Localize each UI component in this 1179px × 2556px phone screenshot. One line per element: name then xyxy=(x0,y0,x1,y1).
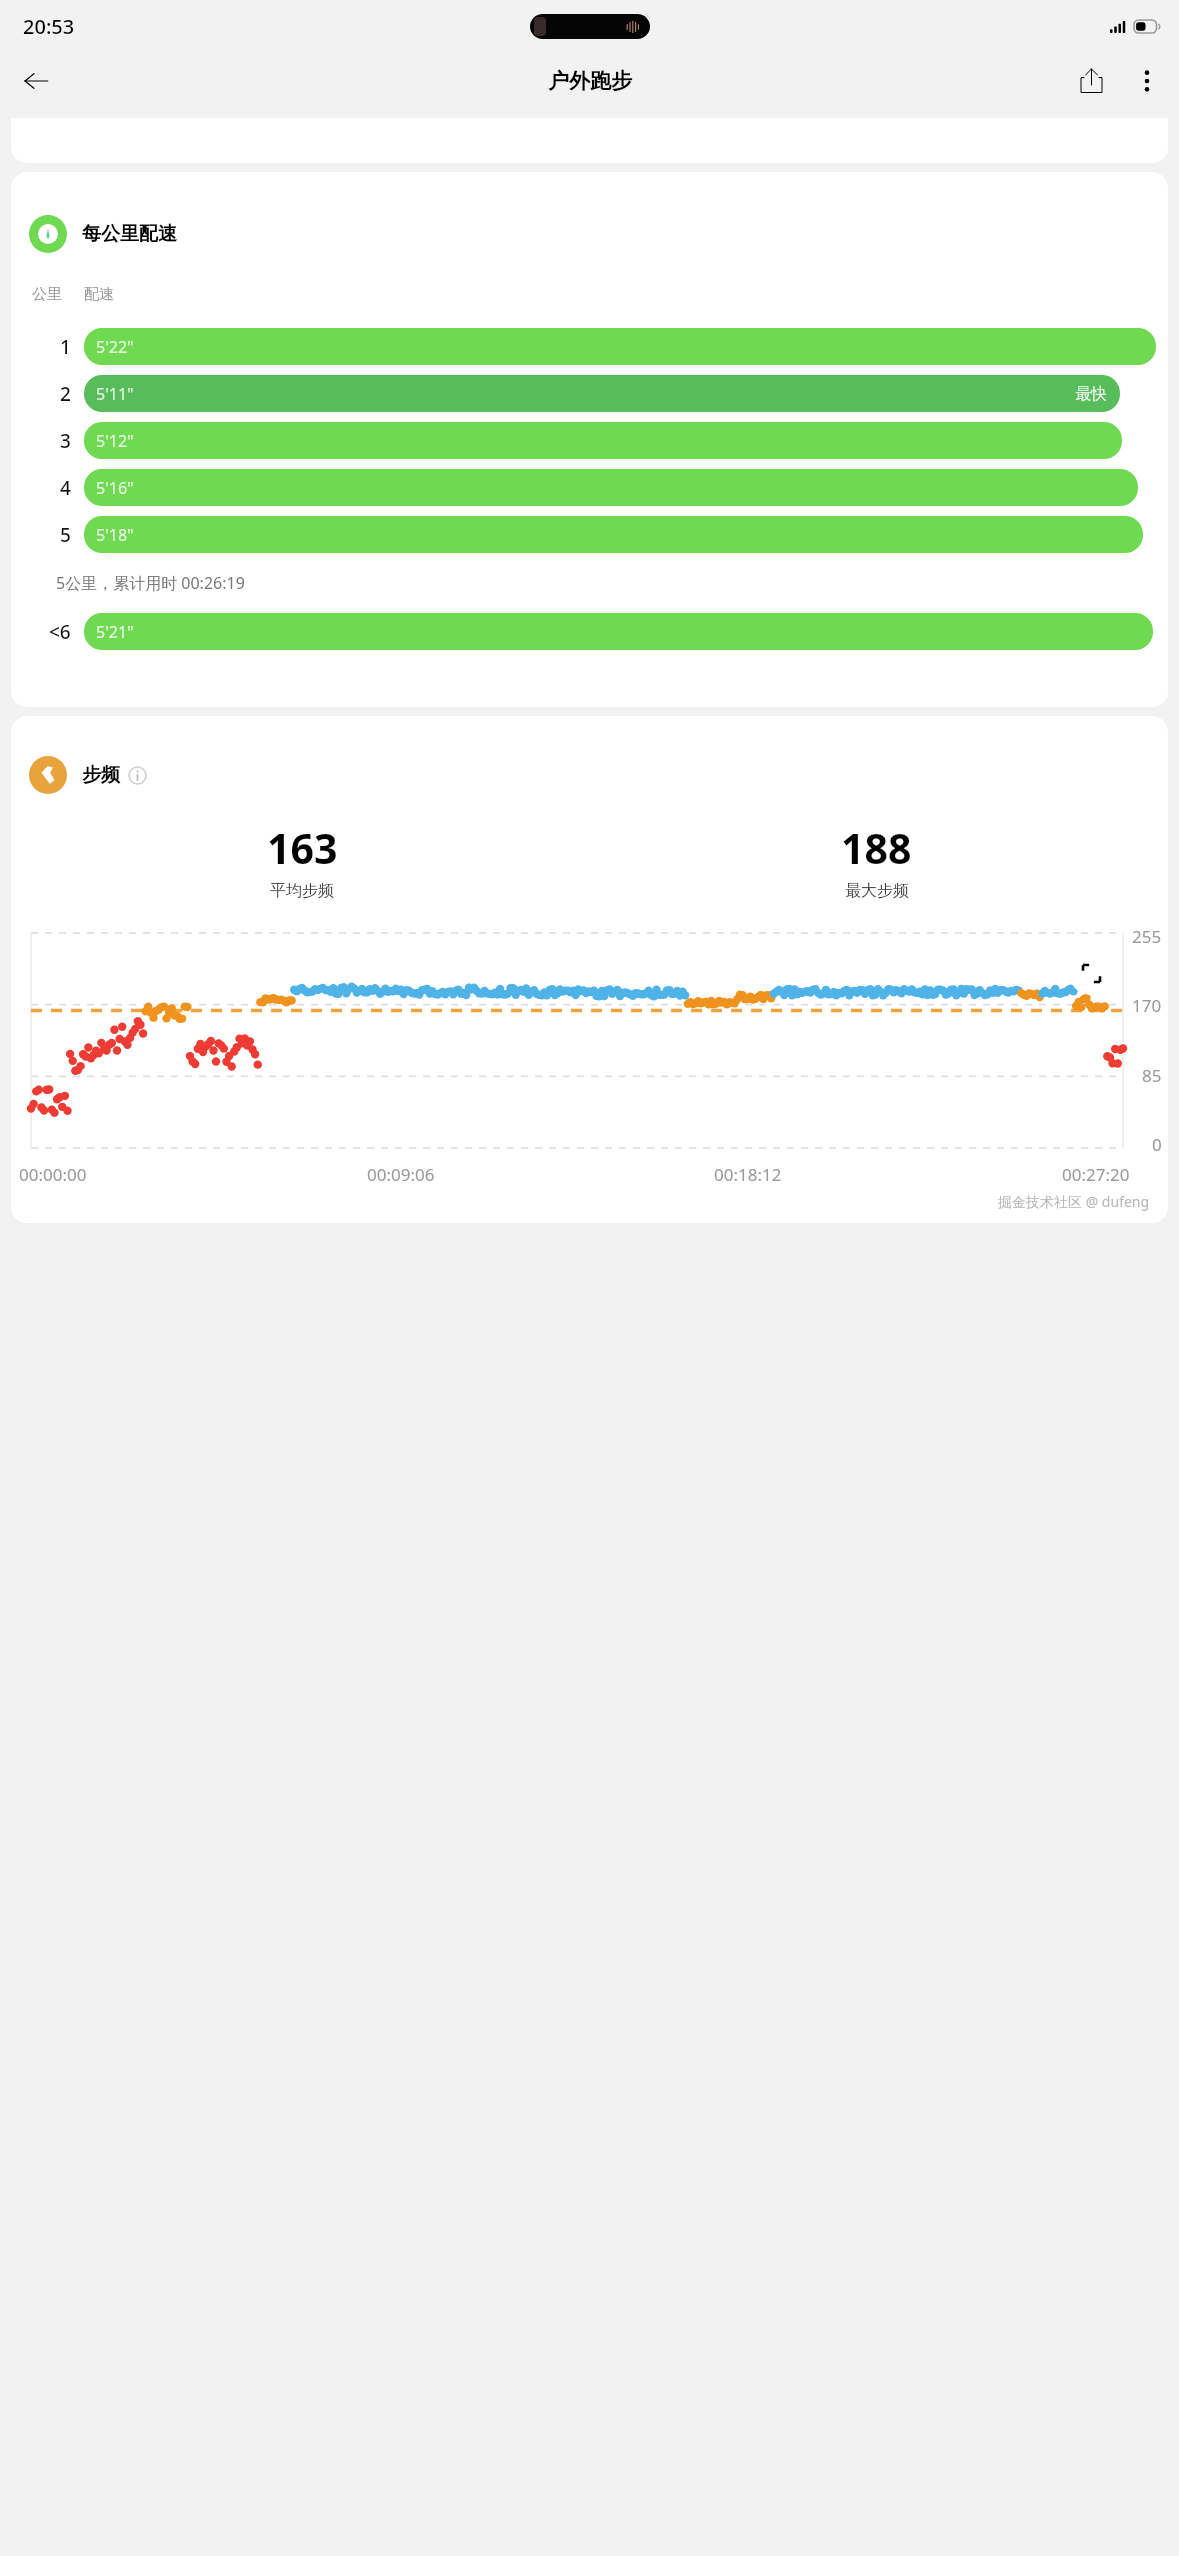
staticText: 5'18" xyxy=(96,524,134,546)
staticText: 1 xyxy=(60,334,71,360)
staticText: 5'21" xyxy=(96,621,134,643)
staticText: 5'12" xyxy=(96,430,134,452)
button[interactable]: Share xyxy=(1063,53,1119,108)
staticText: <6 xyxy=(49,619,71,645)
staticText: 5'16" xyxy=(96,477,134,499)
staticText: 00:27:20 xyxy=(1062,1163,1130,1186)
button[interactable]: Back xyxy=(8,53,64,108)
staticText: 5公里，累计用时 00:26:19 xyxy=(56,572,245,594)
button[interactable]: 步频 xyxy=(11,716,1168,1223)
staticText: 188 xyxy=(841,820,912,876)
staticText: 255 xyxy=(1132,925,1162,948)
staticText: 平均步频 xyxy=(270,881,334,901)
staticText: 2 xyxy=(60,381,71,407)
button[interactable]: 每公里配速 xyxy=(11,172,1168,707)
staticText: 0 xyxy=(1152,1133,1162,1156)
staticText: 配速 xyxy=(84,285,114,304)
staticText: 公里 xyxy=(32,285,62,304)
staticText: 步频 xyxy=(82,763,120,787)
staticText: 85 xyxy=(1142,1064,1162,1087)
button[interactable]: Info xyxy=(127,765,148,786)
staticText: 00:09:06 xyxy=(367,1163,435,1186)
staticText: 户外跑步 xyxy=(548,68,632,94)
staticText: 4 xyxy=(60,475,71,501)
staticText: 每公里配速 xyxy=(82,222,177,246)
staticText: 最快 xyxy=(1075,384,1107,404)
staticText: 5'11" xyxy=(96,383,134,405)
staticText: 20:53 xyxy=(23,13,75,40)
staticText: 00:18:12 xyxy=(714,1163,782,1186)
staticText: 最大步频 xyxy=(845,881,909,901)
staticText: 5 xyxy=(60,522,71,548)
staticText: 掘金技术社区 @ dufeng xyxy=(998,1192,1150,1211)
button[interactable]: More options xyxy=(1119,53,1175,108)
staticText: 3 xyxy=(60,428,71,454)
button[interactable]: Expand chart xyxy=(1069,951,1113,995)
staticText: 163 xyxy=(267,820,338,876)
staticText: 5'22" xyxy=(96,336,134,358)
staticText: 170 xyxy=(1132,994,1162,1017)
staticText: 00:00:00 xyxy=(19,1163,87,1186)
